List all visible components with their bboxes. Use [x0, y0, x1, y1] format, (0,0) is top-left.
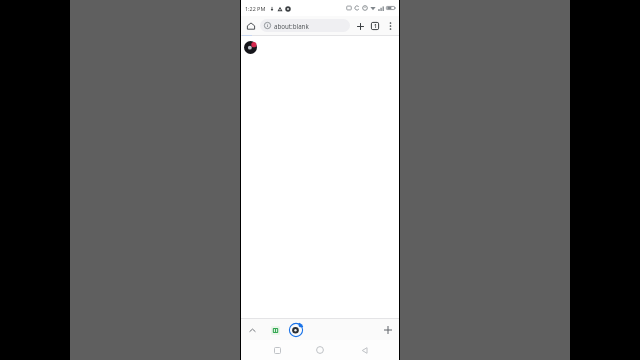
- staticText: 1: [374, 23, 377, 30]
- button[interactable]: Back: [356, 342, 372, 358]
- button[interactable]: Switch tabs: [368, 19, 382, 33]
- button[interactable]: Expand: [245, 323, 259, 337]
- button[interactable]: Home: [312, 342, 328, 358]
- button[interactable]: Add: [380, 322, 395, 337]
- button[interactable]: New tab: [353, 19, 367, 33]
- button[interactable]: Home: [244, 19, 258, 33]
- button[interactable]: Suggestion: [268, 323, 282, 337]
- staticText: about:blank: [274, 22, 309, 30]
- button[interactable]: Recent apps: [269, 342, 285, 358]
- staticText: 1:22 PM: [245, 5, 266, 12]
- other: Page badge: [244, 41, 257, 54]
- button[interactable]: Selected item: [288, 322, 304, 338]
- button[interactable]: about:blank: [260, 19, 350, 32]
- button[interactable]: More options: [383, 19, 397, 33]
